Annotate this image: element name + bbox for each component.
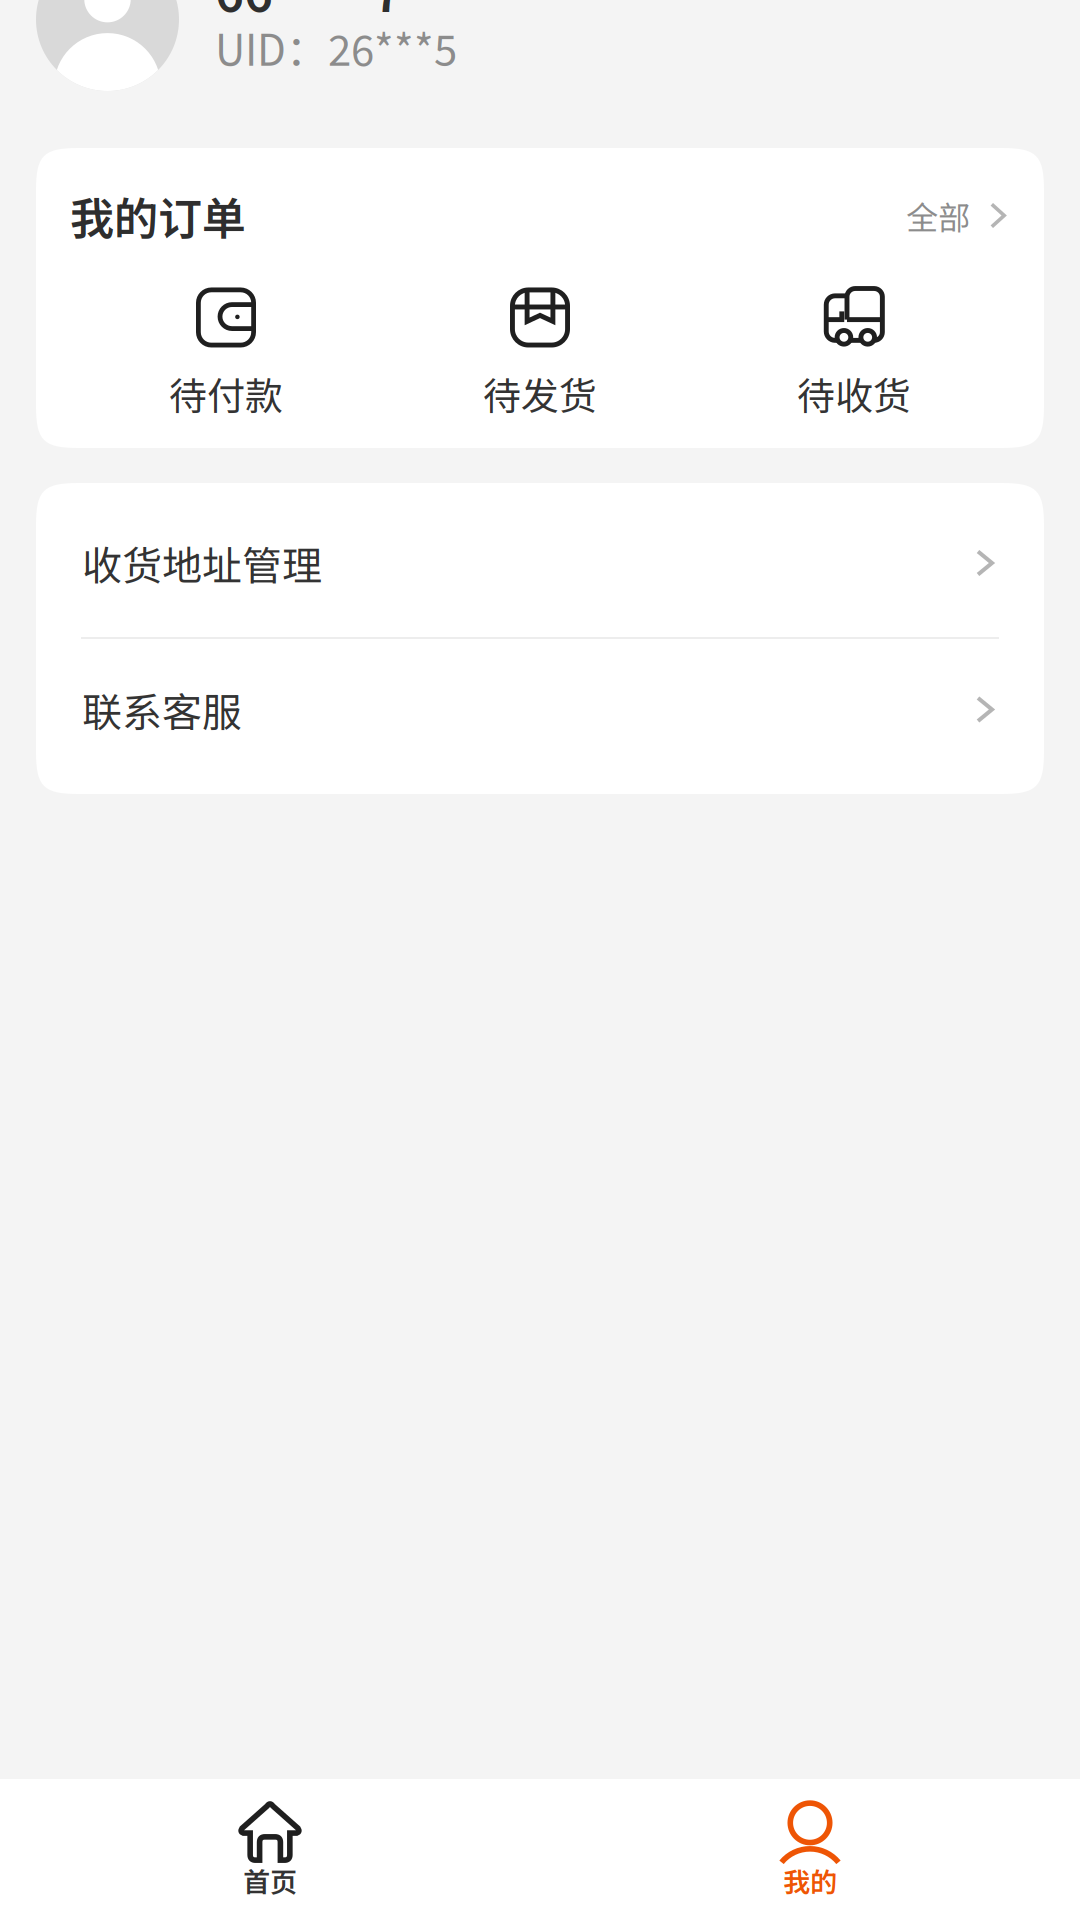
- staticText: 收货地址管理: [82, 534, 322, 592]
- button[interactable]: 全部: [906, 190, 1006, 240]
- button[interactable]: 收货地址管理: [36, 483, 1044, 637]
- button[interactable]: 待收货: [697, 289, 1011, 420]
- staticText: 首页: [243, 1861, 297, 1900]
- staticText: 我的订单: [70, 184, 246, 247]
- button[interactable]: 66****7: [0, 0, 1080, 112]
- button[interactable]: 首页: [0, 1779, 540, 1920]
- button[interactable]: 我的: [540, 1779, 1080, 1920]
- staticText: 待收货: [797, 366, 911, 421]
- staticText: 66****7: [215, 0, 402, 26]
- staticText: UID：26***5: [215, 17, 457, 78]
- staticText: 待付款: [169, 366, 283, 421]
- staticText: 我的: [783, 1861, 837, 1900]
- staticText: 全部: [906, 192, 970, 239]
- button[interactable]: 联系客服: [36, 639, 1044, 794]
- staticText: 联系客服: [82, 680, 242, 738]
- staticText: 待发货: [483, 366, 597, 421]
- button[interactable]: 待付款: [69, 289, 383, 420]
- button[interactable]: 待发货: [383, 289, 697, 420]
